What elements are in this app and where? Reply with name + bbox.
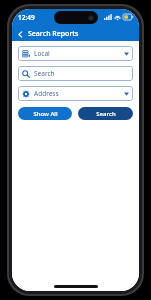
button[interactable]: Local <box>18 46 133 61</box>
staticText: 12:49 <box>18 13 35 22</box>
button[interactable]: Show All <box>18 107 72 120</box>
button[interactable]: Address <box>18 86 133 101</box>
button[interactable]: Back <box>12 27 28 41</box>
staticText: Address <box>34 89 124 98</box>
staticText: Local <box>34 49 124 58</box>
staticText: Search <box>96 110 116 118</box>
staticText: Search <box>34 69 129 78</box>
button[interactable]: Search <box>78 107 133 120</box>
staticText: Search Reports <box>28 29 79 39</box>
staticText: Show All <box>33 110 58 118</box>
button[interactable]: Search <box>18 66 133 81</box>
